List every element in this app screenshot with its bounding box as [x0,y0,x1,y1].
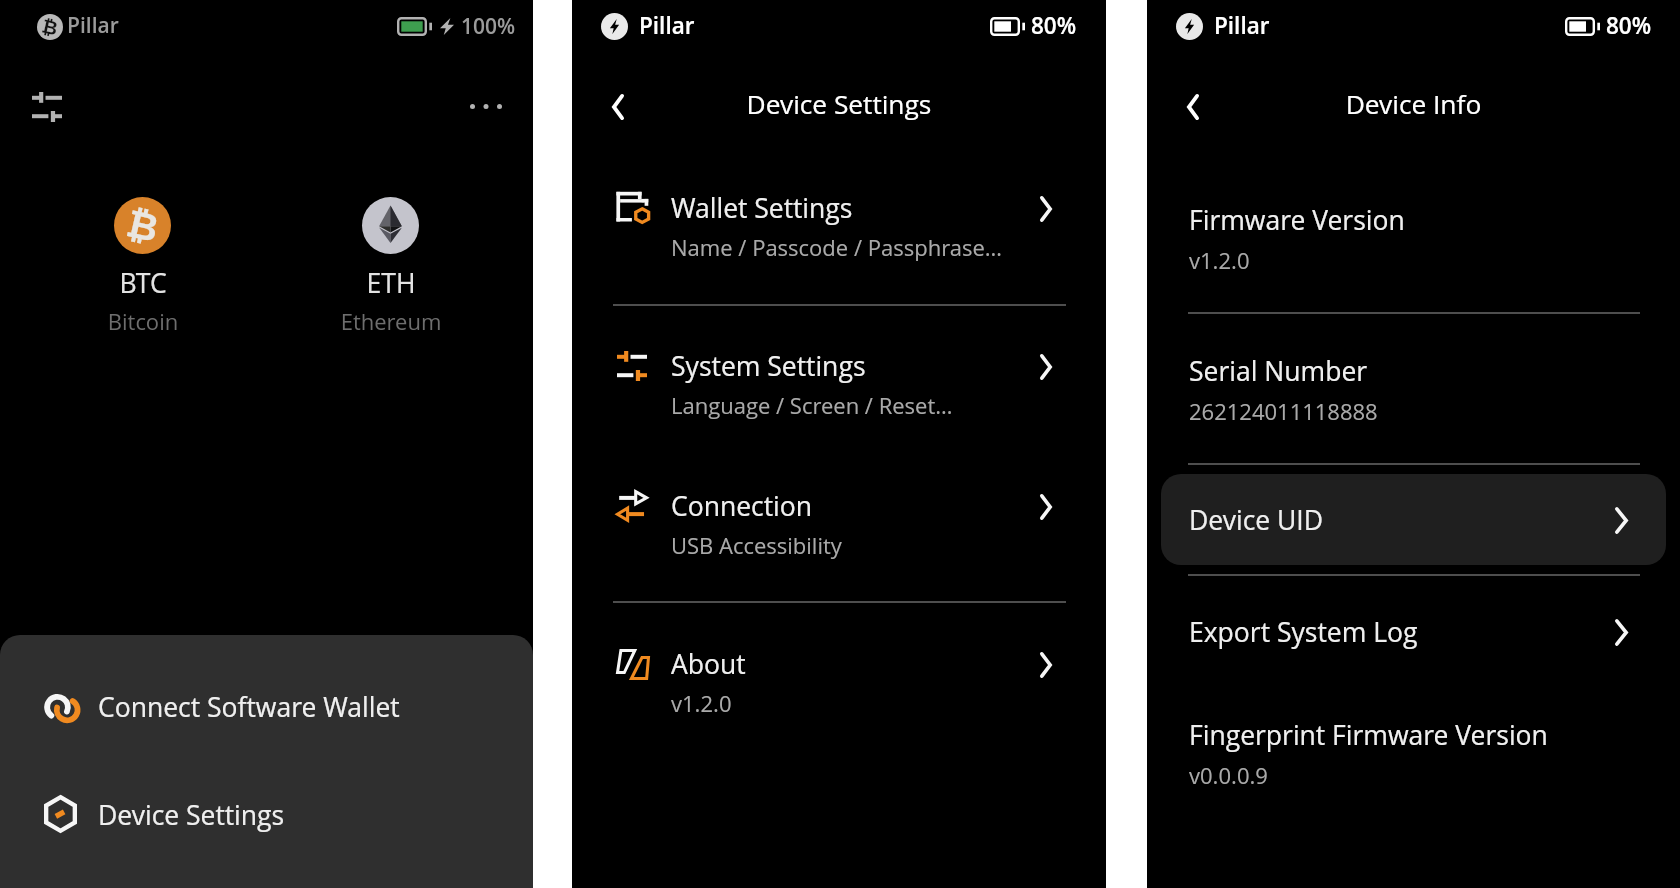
staticText: Serial Number [1189,353,1368,389]
staticText: v1.2.0 [671,688,732,718]
button[interactable]: System Settings [572,316,1106,456]
button[interactable] [1161,581,1666,683]
staticText: ₿ [123,202,162,250]
staticText: Firmware Version [1189,202,1405,238]
button[interactable]: Connect Software Wallet [0,662,533,752]
staticText: 80% [1031,10,1077,41]
button[interactable]: Filter [18,78,75,135]
staticText: ₿ [40,15,60,40]
button[interactable] [1161,683,1666,823]
staticText: BTC [81,265,205,301]
staticText: Export System Log [1189,614,1418,650]
button[interactable]: ETH [329,188,453,340]
staticText: v0.0.0.9 [1189,760,1268,790]
staticText: Device Info [1147,86,1680,122]
staticText: Name / Passcode / Passphrase… [671,232,1003,262]
button[interactable] [1161,168,1666,308]
staticText: Bitcoin [81,306,205,336]
button[interactable]: Back [1163,78,1220,135]
staticText: System Settings [671,348,866,384]
staticText: Wallet Settings [671,190,853,226]
button[interactable]: Device Settings [0,770,533,860]
button[interactable]: Connection [572,456,1106,596]
button[interactable]: More options [450,78,514,135]
button[interactable]: Wallet Settings [572,158,1106,298]
staticText: v1.2.0 [1189,245,1250,275]
staticText: Device Settings [572,86,1106,122]
staticText: 80% [1606,10,1652,41]
staticText: Connection [671,488,813,524]
staticText: Fingerprint Firmware Version [1189,717,1548,753]
button[interactable]: About [572,614,1106,754]
staticText: Device UID [1189,502,1324,538]
staticText: Pillar [1214,10,1270,41]
staticText: Connect Software Wallet [98,689,400,725]
staticText: Language / Screen / Reset… [671,390,953,420]
button[interactable]: Back [588,78,645,135]
staticText: Device Settings [98,797,285,833]
staticText: Ethereum [329,306,453,336]
staticText: Pillar [639,10,695,41]
staticText: 100% [461,12,516,41]
staticText: About [671,646,746,682]
staticText: ETH [329,265,453,301]
staticText: Pillar [67,11,119,40]
button[interactable] [1161,319,1666,459]
button[interactable] [1161,474,1666,565]
staticText: 262124011118888 [1189,396,1378,426]
staticText: USB Accessibility [671,530,842,560]
button[interactable]: ₿ [81,188,205,340]
